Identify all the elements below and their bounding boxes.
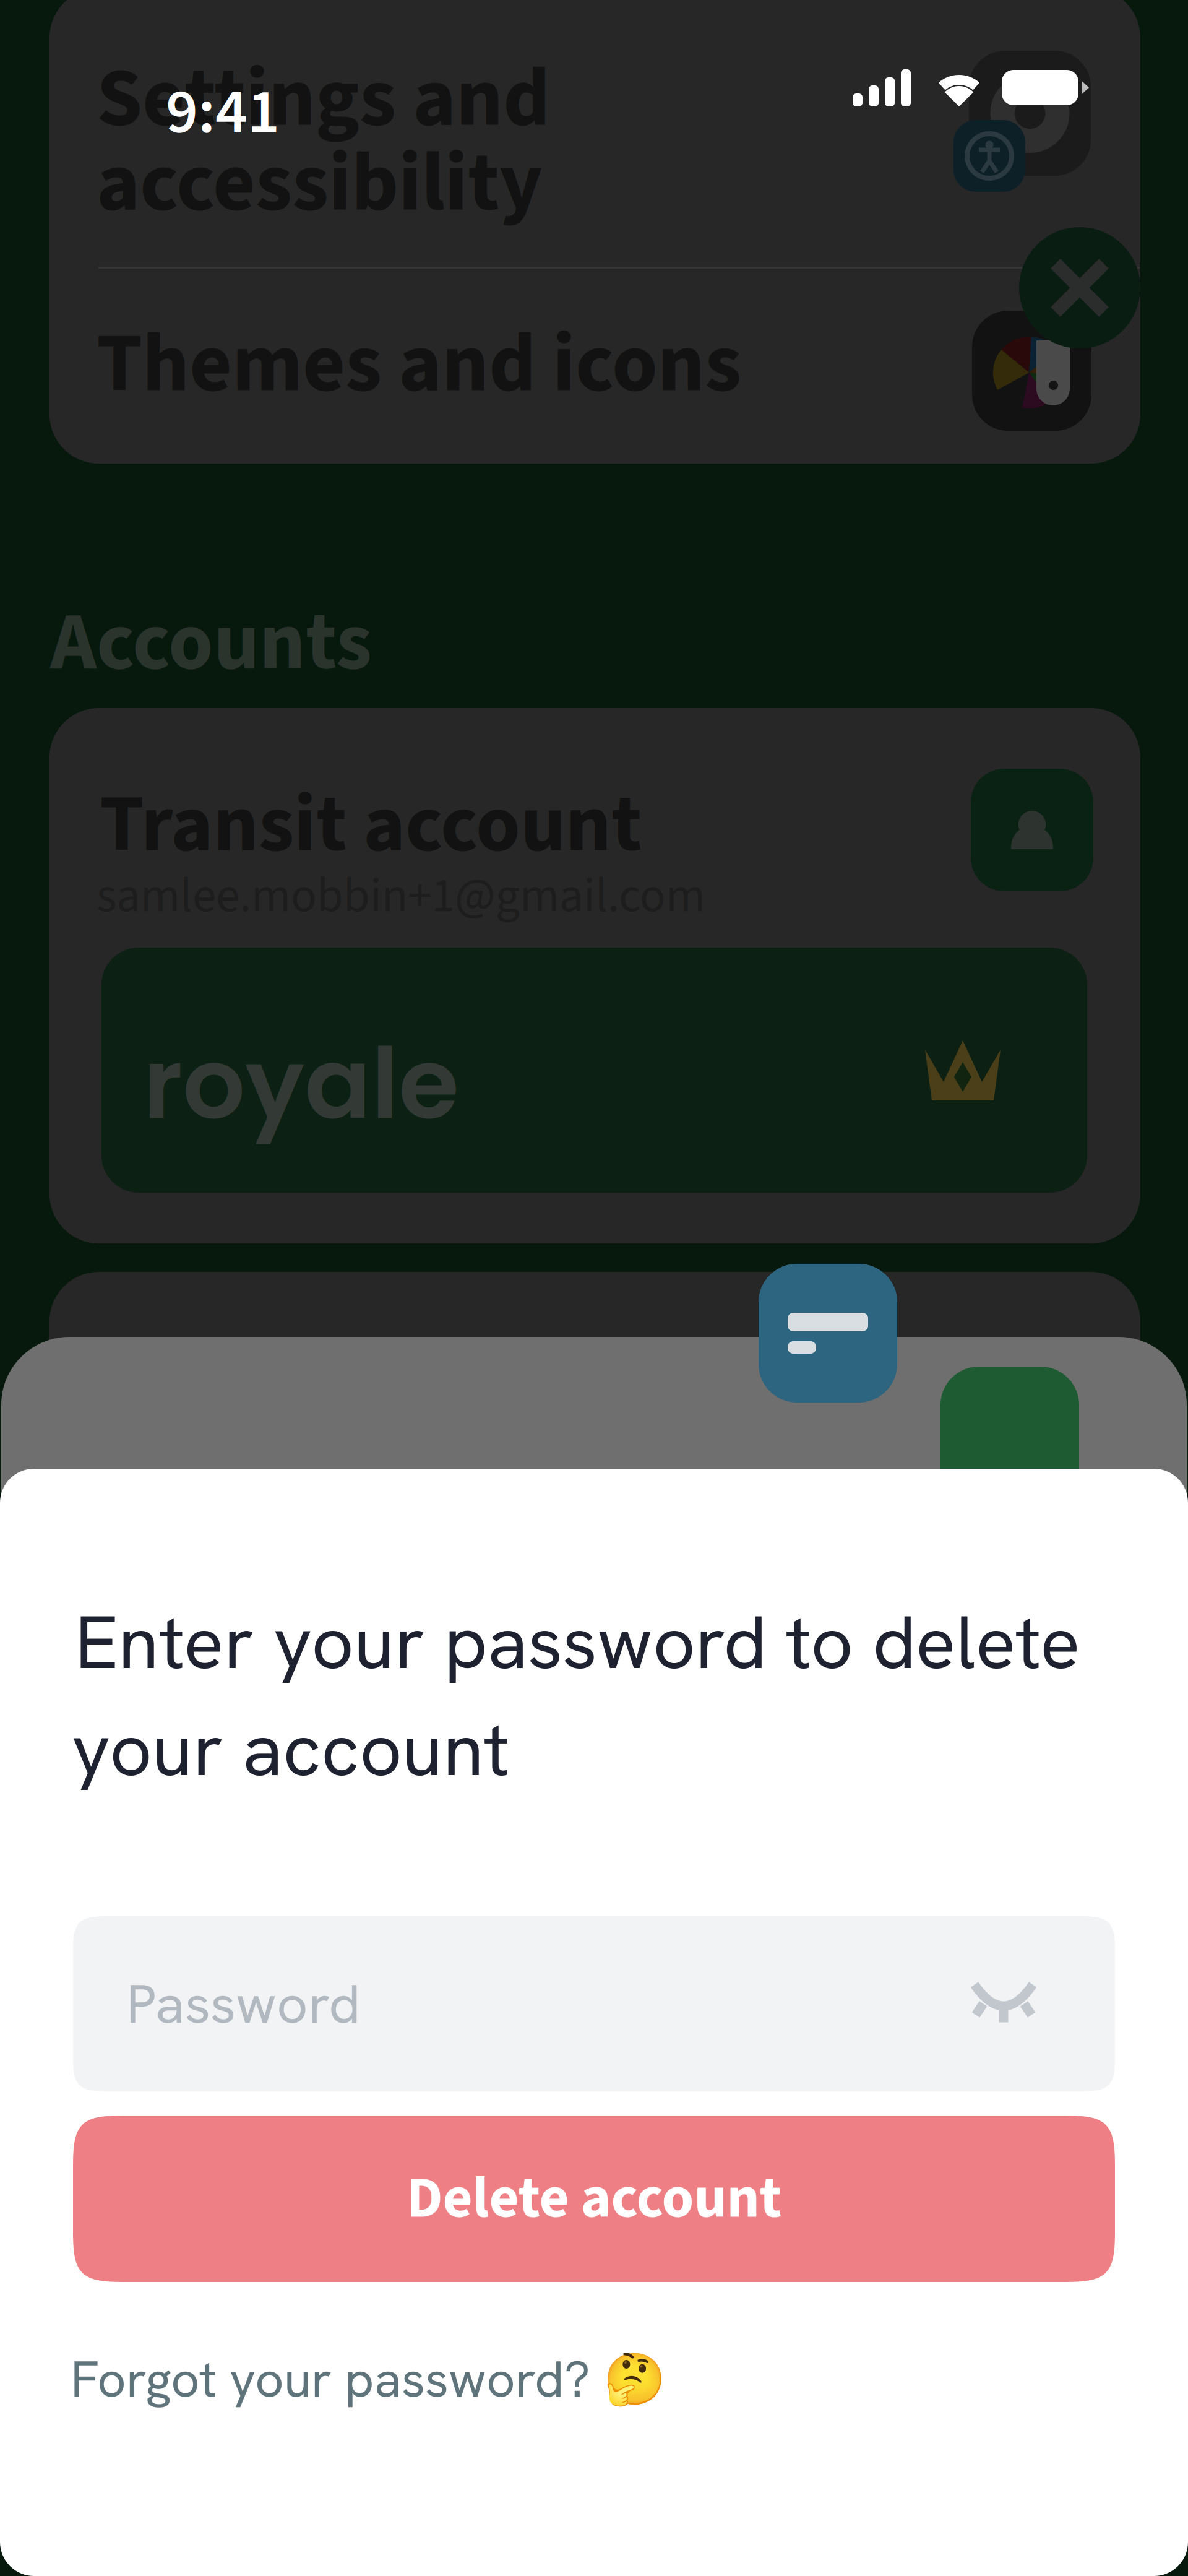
staticText: your account xyxy=(72,1701,510,1798)
staticText: accessibility xyxy=(97,125,542,243)
button[interactable]: Delete account xyxy=(73,2116,1115,2282)
staticText: Delete account xyxy=(406,2158,782,2240)
staticText: Transit account xyxy=(100,768,642,882)
staticText: Settings and xyxy=(97,40,550,158)
button[interactable]: Close xyxy=(1019,227,1140,348)
staticText: samlee.mobbin+1@gmail.com xyxy=(97,862,705,930)
button[interactable]: Password xyxy=(73,1916,1115,2091)
button[interactable]: Forgot your password? 🤔 xyxy=(71,2339,813,2419)
staticText: Forgot your password? 🤔 xyxy=(71,2346,666,2412)
staticText: Enter your password to delete xyxy=(75,1594,1080,1691)
staticText: Accounts xyxy=(50,586,372,701)
staticText: Themes and icons xyxy=(97,306,741,423)
staticText: Password xyxy=(126,1968,361,2039)
staticText: 9:41 xyxy=(166,68,280,157)
staticText: royale xyxy=(143,1015,459,1153)
